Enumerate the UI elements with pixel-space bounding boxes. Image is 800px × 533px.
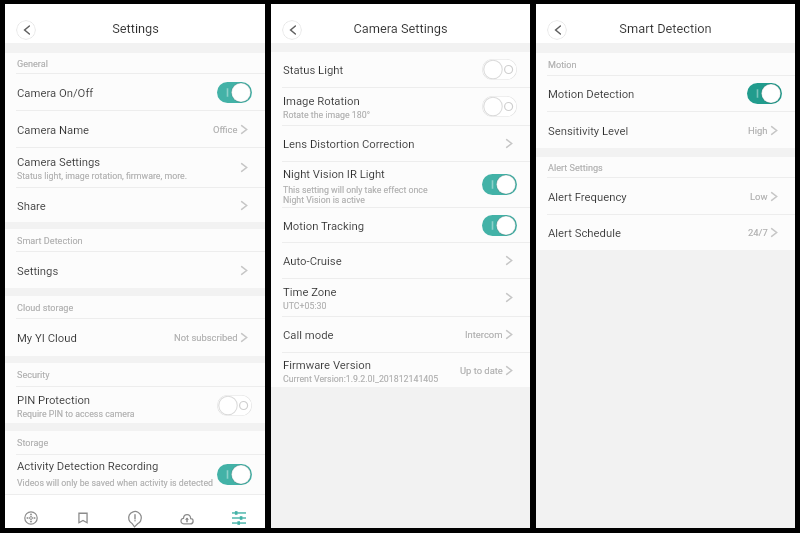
staticText: Videos will only be saved when activity … bbox=[17, 478, 214, 488]
staticText: Storage bbox=[17, 438, 49, 449]
staticText: Sensitivity Level bbox=[548, 125, 629, 138]
button[interactable]: Share bbox=[5, 188, 265, 222]
staticText: UTC+05:30 bbox=[283, 301, 327, 311]
staticText: Smart Detection bbox=[619, 21, 712, 36]
staticText: Share bbox=[17, 200, 46, 213]
button[interactable] bbox=[217, 82, 252, 103]
staticText: Alert Frequency bbox=[548, 191, 627, 204]
button[interactable]: Time Zone bbox=[271, 279, 530, 316]
staticText: Settings bbox=[17, 265, 59, 278]
button[interactable]: Back bbox=[547, 20, 567, 40]
staticText: Intercom bbox=[465, 329, 503, 340]
button[interactable]: Camera On/Off bbox=[5, 74, 265, 110]
button[interactable]: Back bbox=[282, 20, 302, 40]
staticText: Up to date bbox=[460, 365, 503, 376]
button[interactable]: Cloud bbox=[161, 495, 213, 528]
staticText: Security bbox=[17, 370, 50, 381]
button[interactable] bbox=[217, 395, 252, 416]
button[interactable]: Alerts bbox=[109, 495, 161, 528]
button[interactable]: Alert Schedule bbox=[536, 215, 795, 250]
button[interactable]: Call mode bbox=[271, 317, 530, 352]
staticText: Camera Settings bbox=[353, 21, 448, 36]
staticText: Motion bbox=[548, 60, 577, 71]
staticText: Cloud storage bbox=[17, 303, 74, 314]
button[interactable] bbox=[482, 59, 517, 80]
staticText: Image Rotation bbox=[283, 95, 360, 108]
staticText: Activity Detection Recording bbox=[17, 460, 159, 473]
button[interactable]: Firmware Version bbox=[271, 353, 530, 387]
staticText: Require PIN to access camera bbox=[17, 409, 135, 419]
button[interactable]: PIN Protection bbox=[5, 387, 265, 423]
staticText: General bbox=[17, 59, 48, 70]
staticText: Alert Settings bbox=[548, 163, 603, 174]
button[interactable]: Camera Settings bbox=[5, 148, 265, 187]
staticText: Rotate the image 180° bbox=[283, 110, 370, 120]
staticText: Night Vision IR Light bbox=[283, 168, 385, 181]
button[interactable] bbox=[217, 464, 252, 485]
button[interactable]: Image Rotation bbox=[271, 88, 530, 125]
staticText: Low bbox=[750, 191, 768, 202]
staticText: Office bbox=[213, 124, 238, 135]
staticText: Settings bbox=[112, 21, 159, 36]
staticText: Camera On/Off bbox=[17, 87, 94, 100]
button[interactable]: Night Vision IR Light bbox=[271, 162, 530, 207]
button[interactable]: My YI Cloud bbox=[5, 319, 265, 356]
staticText: Not subscribed bbox=[174, 332, 238, 343]
button[interactable] bbox=[482, 215, 517, 236]
button[interactable]: Status Light bbox=[271, 52, 530, 87]
staticText: This setting will only take effect once … bbox=[283, 185, 428, 205]
button[interactable]: Bookmarks bbox=[57, 495, 109, 528]
button[interactable]: Lens Distortion Correction bbox=[271, 126, 530, 161]
button[interactable]: Settings bbox=[5, 252, 265, 288]
button[interactable]: Auto-Cruise bbox=[271, 243, 530, 278]
staticText: Alert Schedule bbox=[548, 227, 621, 240]
button[interactable] bbox=[747, 83, 782, 104]
button[interactable]: Live view bbox=[5, 495, 57, 528]
staticText: Current Version:1.9.2.0I_201812141405 bbox=[283, 374, 439, 384]
staticText: My YI Cloud bbox=[17, 332, 77, 345]
staticText: Smart Detection bbox=[17, 236, 83, 247]
staticText: Motion Tracking bbox=[283, 220, 365, 233]
staticText: Time Zone bbox=[283, 286, 337, 299]
staticText: Camera Name bbox=[17, 124, 90, 137]
staticText: Call mode bbox=[283, 329, 334, 342]
button[interactable]: Sensitivity Level bbox=[536, 112, 795, 148]
staticText: Auto-Cruise bbox=[283, 255, 342, 268]
staticText: Lens Distortion Correction bbox=[283, 138, 415, 151]
staticText: Status Light bbox=[283, 64, 344, 77]
button[interactable]: Motion Detection bbox=[536, 76, 795, 111]
button[interactable]: Activity Detection Recording bbox=[5, 455, 265, 494]
staticText: Camera Settings bbox=[17, 156, 101, 169]
button[interactable]: Back bbox=[16, 20, 36, 40]
button[interactable]: Motion Tracking bbox=[271, 208, 530, 242]
staticText: PIN Protection bbox=[17, 394, 91, 407]
staticText: Motion Detection bbox=[548, 88, 635, 101]
button[interactable]: Camera Name bbox=[5, 111, 265, 147]
staticText: 24/7 bbox=[748, 227, 768, 238]
button[interactable]: Settings bbox=[213, 495, 265, 528]
staticText: Firmware Version bbox=[283, 359, 371, 372]
button[interactable] bbox=[482, 96, 517, 117]
button[interactable] bbox=[482, 174, 517, 195]
button[interactable]: Alert Frequency bbox=[536, 178, 795, 214]
staticText: High bbox=[748, 125, 768, 136]
staticText: Status light, image rotation, firmware, … bbox=[17, 171, 188, 181]
